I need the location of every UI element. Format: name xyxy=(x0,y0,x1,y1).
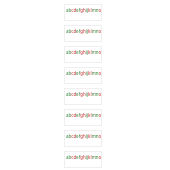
staticText: abcdefghijklmnopqrstuvwxyzabcdefg xyxy=(66,91,102,97)
staticText: abcdefghijklmnopqrstuvwxyzabcdefg xyxy=(66,49,102,55)
staticText: abcdefghijklmnopqrstuvwxyzabcdefg xyxy=(66,7,102,13)
staticText: abcdefghijklmnopqrstuvwxyzabcdefg xyxy=(66,133,102,139)
staticText: abcdefghijklmnopqrstuvwxyzabcdefg xyxy=(66,28,102,34)
staticText: abcdefghijklmnopqrstuvwxyzabcdefg xyxy=(66,112,102,118)
staticText: abcdefghijklmnopqrstuvwxyzabcdefg xyxy=(66,154,102,160)
staticText: abcdefghijklmnopqrstuvwxyzabcdefg xyxy=(66,70,102,76)
